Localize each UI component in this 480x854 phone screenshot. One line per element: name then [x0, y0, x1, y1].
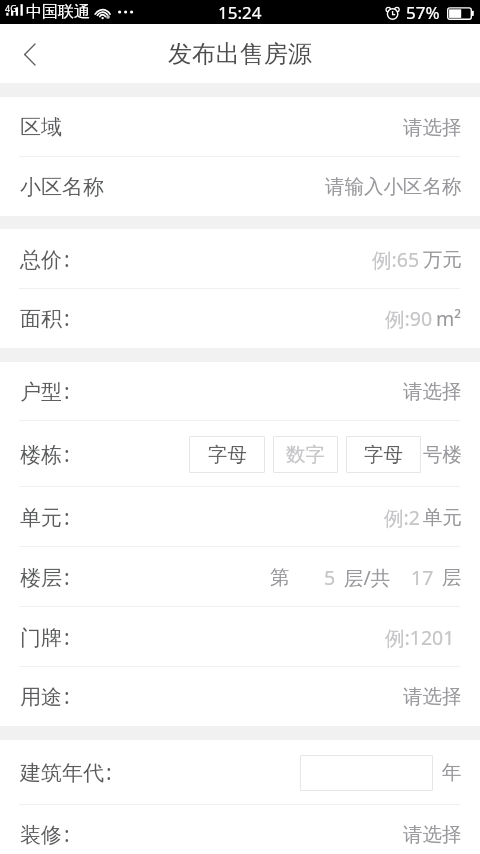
staticText: 中国联通 [26, 2, 90, 22]
staticText: 请选择 [403, 379, 462, 404]
staticText: 面积 : [20, 304, 70, 333]
staticText: 请选择 [403, 684, 462, 709]
button[interactable]: 用途 : [0, 667, 480, 726]
staticText: 请选择 [403, 822, 462, 847]
staticText: 字母 [364, 442, 403, 467]
staticText: 户型 : [20, 377, 70, 406]
staticText: 15:24 [218, 1, 262, 24]
button[interactable]: 楼层 : [0, 547, 480, 607]
button[interactable]: 建筑年代 : [0, 740, 480, 805]
staticText: 单元 [423, 505, 462, 530]
staticText: 小区名称 [20, 174, 104, 200]
button[interactable]: 字母 [189, 436, 265, 473]
button[interactable] [300, 755, 433, 791]
staticText: 例:65 [372, 246, 420, 273]
staticText: 万元 [423, 247, 462, 272]
staticText: 楼栋 : [20, 440, 70, 469]
button[interactable]: 户型 : [0, 362, 480, 421]
button[interactable]: 单元 : [0, 487, 480, 547]
staticText: 例:1201 [385, 624, 455, 651]
staticText: 建筑年代 : [20, 758, 112, 787]
staticText: 年 [442, 760, 462, 785]
staticText: 例:2 [384, 504, 420, 531]
staticText: 装修 : [20, 820, 70, 849]
staticText: 请输入小区名称 [325, 174, 462, 199]
staticText: 数字 [286, 442, 325, 467]
staticText: 第 [270, 565, 290, 590]
staticText: 字母 [208, 442, 247, 467]
button[interactable]: Back [0, 25, 58, 83]
staticText: m² [436, 305, 462, 332]
staticText: 总价 : [20, 245, 70, 274]
button[interactable]: 小区名称 [0, 157, 480, 216]
button[interactable]: 总价 : [0, 229, 480, 289]
button[interactable]: 区域 [0, 97, 480, 157]
staticText: 57% [406, 1, 440, 24]
staticText: 门牌 : [20, 623, 70, 652]
staticText: 17 [411, 564, 434, 591]
button[interactable]: 面积 : [0, 289, 480, 348]
button[interactable]: 数字 [273, 436, 338, 473]
button[interactable]: 装修 : [0, 805, 480, 854]
staticText: 4G [5, 2, 17, 14]
staticText: 用途 : [20, 682, 70, 711]
staticText: 层 [442, 565, 462, 590]
button[interactable]: 楼栋 : [0, 421, 480, 487]
staticText: 请选择 [403, 115, 462, 140]
staticText: 层/共 [344, 564, 391, 591]
staticText: 号楼 [423, 442, 462, 467]
button[interactable]: 字母 [346, 436, 421, 473]
staticText: 区域 [20, 114, 62, 140]
staticText: 楼层 : [20, 563, 70, 592]
staticText: 例:90 [385, 305, 433, 332]
staticText: 5 [324, 564, 336, 591]
staticText: 单元 : [20, 503, 70, 532]
button[interactable]: 门牌 : [0, 607, 480, 667]
staticText: 发布出售房源 [168, 39, 312, 69]
